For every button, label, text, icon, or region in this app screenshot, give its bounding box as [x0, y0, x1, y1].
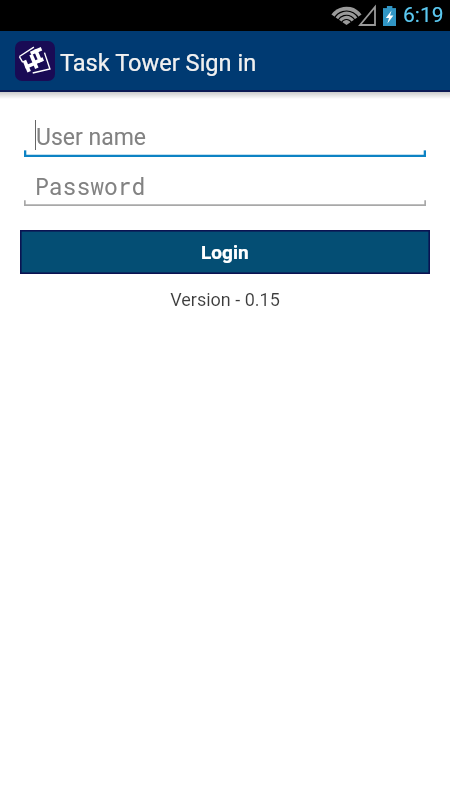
- button[interactable]: User name: [24, 118, 426, 157]
- staticText: User name: [36, 124, 147, 151]
- staticText: Login: [201, 241, 249, 263]
- other: Task Tower app icon: [15, 41, 55, 81]
- button[interactable]: Password: [24, 167, 426, 206]
- staticText: Version - 0.15: [0, 289, 450, 310]
- staticText: 6:19: [403, 3, 444, 28]
- button[interactable]: Login: [20, 230, 430, 274]
- staticText: Password: [35, 171, 146, 201]
- staticText: Task Tower Sign in: [60, 49, 257, 77]
